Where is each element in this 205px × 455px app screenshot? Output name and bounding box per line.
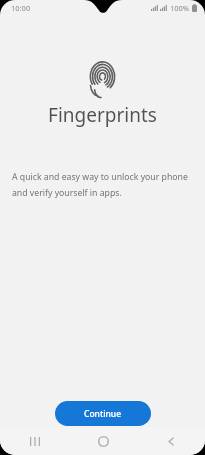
button[interactable]: Home	[69, 428, 137, 455]
staticText: Continue	[84, 408, 122, 420]
button[interactable]: Back	[137, 428, 205, 455]
staticText: A quick and easy way to unlock your phon…	[12, 171, 189, 198]
staticText: Fingerprints	[48, 102, 157, 128]
staticText: 10:00	[11, 3, 31, 13]
button[interactable]: Continue	[55, 401, 151, 426]
staticText: 100%	[170, 3, 190, 13]
button[interactable]: Recent apps	[0, 428, 69, 455]
